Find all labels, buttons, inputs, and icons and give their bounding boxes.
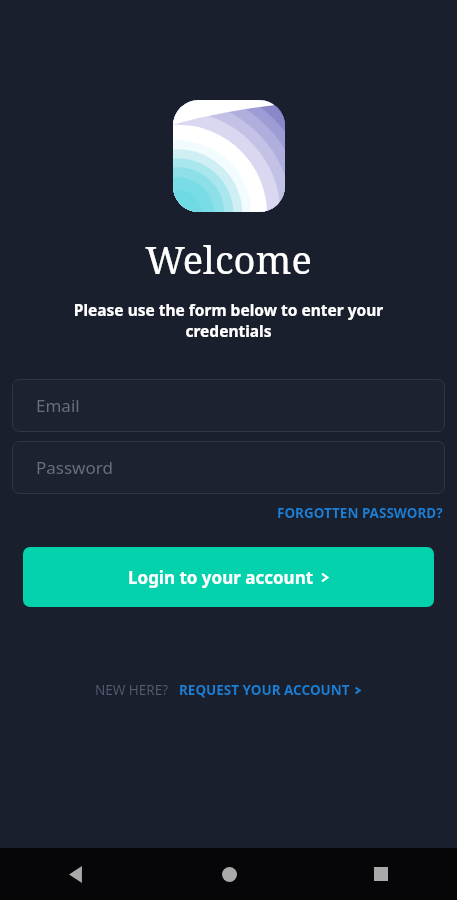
button[interactable]: Email [12,379,445,432]
button[interactable]: FORGOTTEN PASSWORD? [275,500,445,526]
button[interactable]: Back [0,848,153,900]
button[interactable]: Password [12,441,445,494]
staticText: Please use the form below to enter your … [44,299,413,342]
button[interactable]: REQUEST YOUR ACCOUNT [177,677,363,703]
staticText: Password [36,456,113,479]
button[interactable]: Login to your account [23,547,434,607]
staticText: Welcome [145,233,312,285]
staticText: NEW HERE? [95,681,169,699]
staticText: Email [36,394,80,417]
button[interactable]: Recent apps [305,848,457,900]
staticText: REQUEST YOUR ACCOUNT [179,681,350,699]
button[interactable]: Home [153,848,305,900]
staticText: FORGOTTEN PASSWORD? [277,504,443,522]
staticText: Login to your account [128,566,314,589]
